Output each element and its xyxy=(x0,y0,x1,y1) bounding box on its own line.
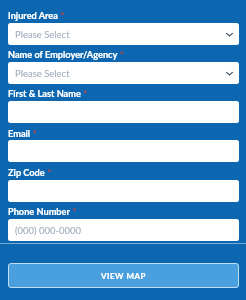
other: Open Name of Employer/Agency list xyxy=(226,70,233,77)
staticText: Please Select xyxy=(15,68,70,79)
staticText: VIEW MAP xyxy=(101,271,146,281)
staticText: (000) 000-0000 xyxy=(15,225,82,236)
button[interactable]: Name of Employer/Agency xyxy=(8,62,239,84)
button[interactable]: First & Last Name xyxy=(8,101,239,123)
staticText: Phone Number * xyxy=(8,205,77,217)
staticText: Please Select xyxy=(15,29,70,40)
button[interactable]: Zip Code xyxy=(8,180,239,202)
other: Open Injured Area list xyxy=(226,31,233,38)
staticText: First & Last Name * xyxy=(8,87,88,99)
staticText: Injured Area * xyxy=(8,9,65,21)
staticText: Name of Employer/Agency * xyxy=(8,48,125,60)
button[interactable]: VIEW MAP xyxy=(8,263,239,288)
staticText: Email * xyxy=(8,127,37,139)
staticText: Zip Code * xyxy=(8,166,52,178)
button[interactable]: Injured Area xyxy=(8,23,239,45)
button[interactable]: Email xyxy=(8,140,239,162)
button[interactable]: Phone Number xyxy=(8,219,239,241)
